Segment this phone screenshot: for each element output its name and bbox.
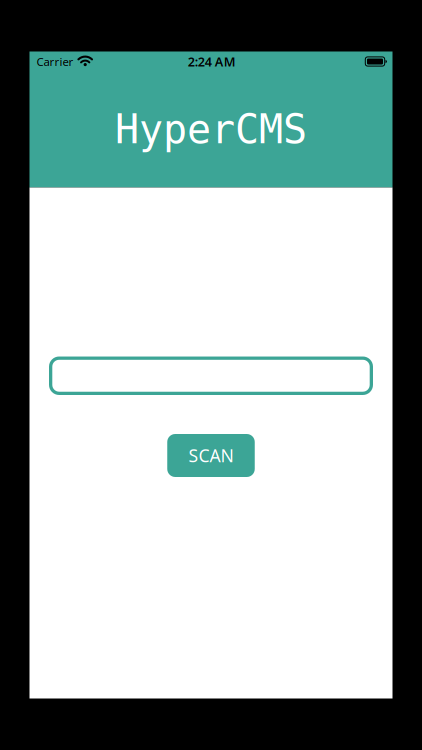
staticText: HyperCMS (115, 106, 307, 153)
button[interactable]: Code entry field (49, 356, 373, 395)
staticText: 2:24 AM (188, 53, 236, 70)
staticText: SCAN (188, 443, 233, 467)
staticText: Carrier (36, 54, 73, 69)
button[interactable]: SCAN (167, 434, 255, 477)
